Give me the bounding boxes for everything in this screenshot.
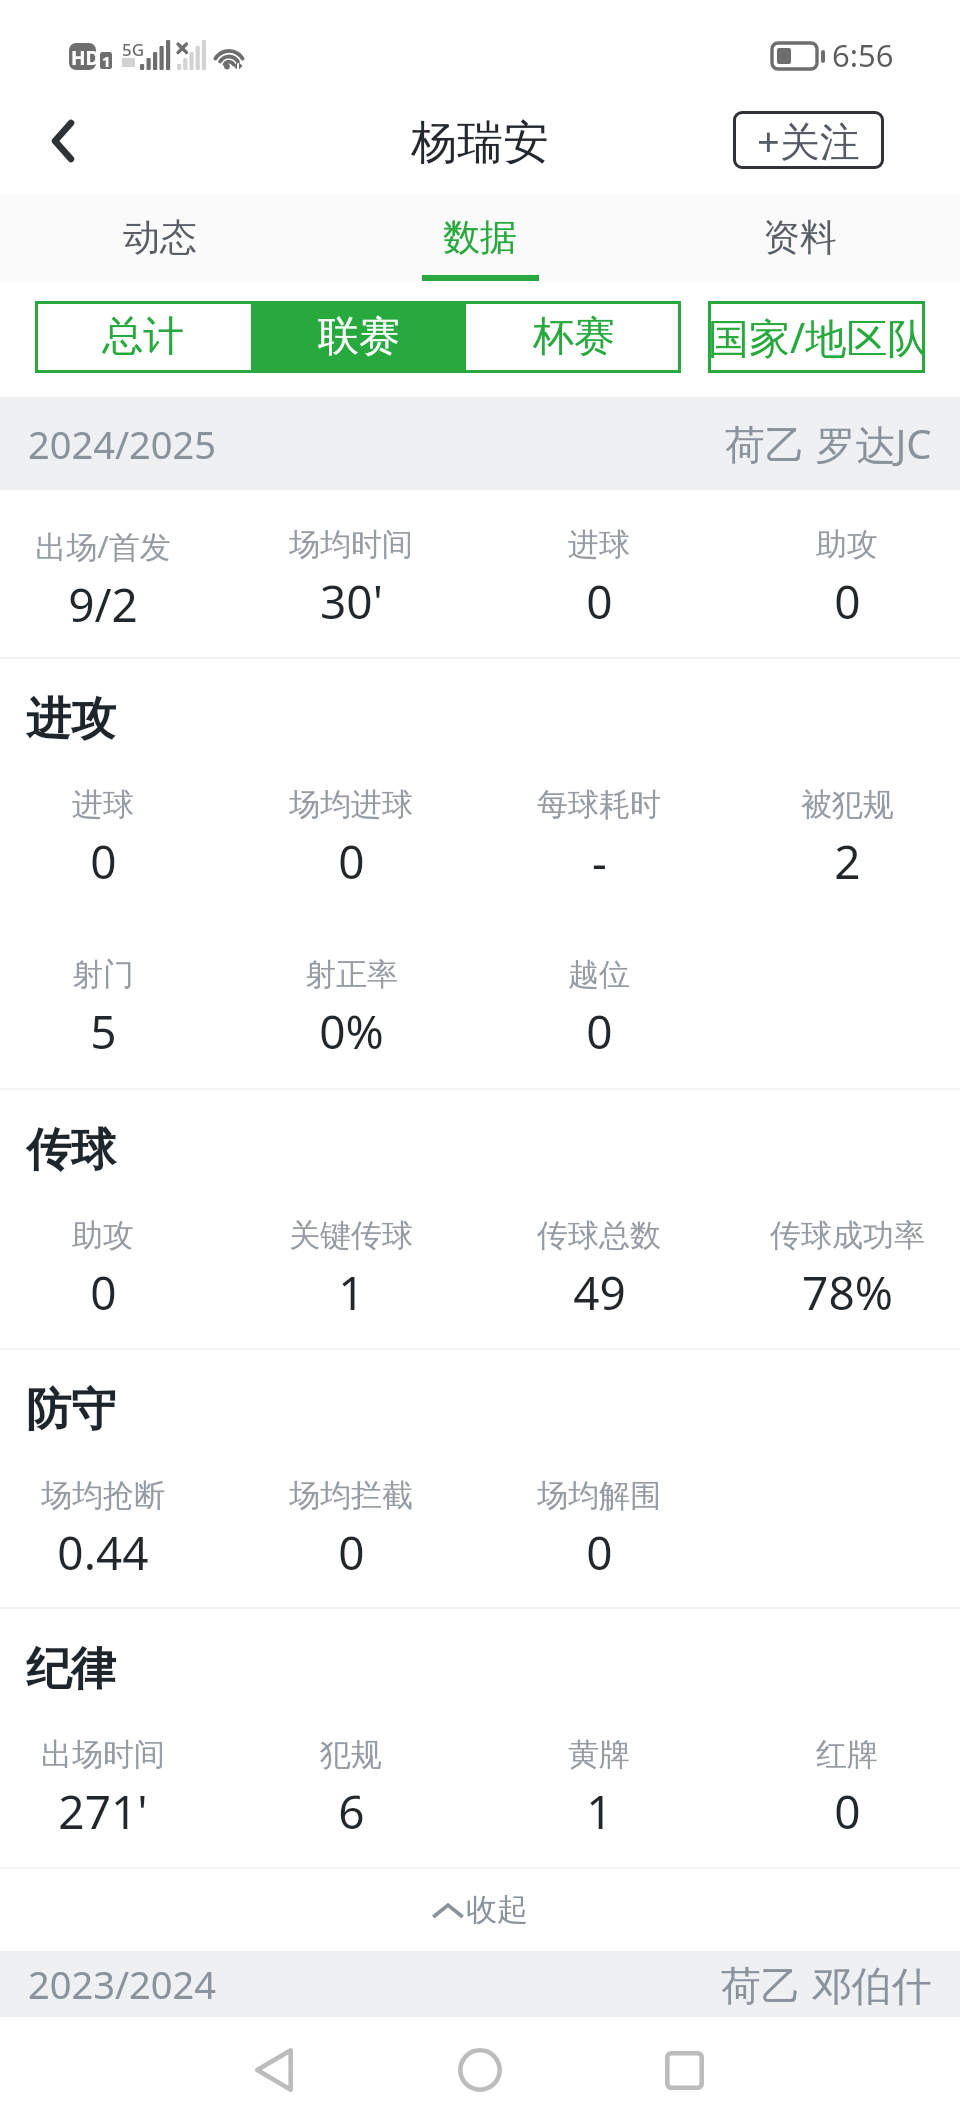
staticText: 联赛	[318, 311, 400, 363]
staticText: -	[592, 830, 607, 893]
button[interactable]: Back	[228, 2024, 320, 2116]
staticText: 0	[338, 830, 365, 893]
staticText: 传球总数	[537, 1216, 661, 1255]
staticText: 1	[102, 51, 111, 71]
staticText: 271'	[58, 1780, 148, 1843]
staticText: 6	[338, 1780, 365, 1843]
button[interactable]: Back	[17, 95, 109, 187]
staticText: 出场时间	[41, 1735, 165, 1774]
staticText: 1	[338, 1261, 365, 1324]
staticText: 射正率	[305, 955, 398, 994]
staticText: HD	[71, 45, 100, 71]
staticText: 总计	[102, 311, 184, 363]
button[interactable]: Recents	[638, 2024, 730, 2116]
staticText: 进球	[568, 525, 630, 564]
button[interactable]: 2024/2025	[0, 397, 960, 490]
staticText: 场均抢断	[41, 1476, 165, 1515]
staticText: 荷乙 罗达JC	[725, 416, 932, 471]
button[interactable]: 联赛	[251, 301, 466, 373]
button[interactable]: 动态	[0, 194, 320, 281]
button[interactable]: 收起	[0, 1869, 960, 1951]
staticText: 2	[834, 830, 861, 893]
staticText: 1	[586, 1780, 613, 1843]
staticText: 被犯规	[801, 785, 894, 824]
staticText: 0	[834, 570, 861, 633]
staticText: 每球耗时	[537, 785, 661, 824]
staticText: 场均拦截	[289, 1476, 413, 1515]
staticText: 越位	[568, 955, 630, 994]
staticText: 防守	[26, 1382, 116, 1439]
staticText: 9/2	[68, 573, 138, 636]
button[interactable]: +关注	[733, 111, 884, 169]
staticText: 进球	[72, 785, 134, 824]
staticText: 场均解围	[537, 1476, 661, 1515]
staticText: 国家/地区队	[708, 309, 925, 365]
staticText: +关注	[757, 113, 860, 168]
staticText: 红牌	[816, 1735, 878, 1774]
staticText: 49	[573, 1261, 626, 1324]
staticText: 0.44	[57, 1521, 149, 1584]
staticText: 资料	[763, 214, 837, 261]
button[interactable]: 数据	[320, 194, 640, 281]
staticText: 6:56	[832, 34, 894, 76]
staticText: 0	[586, 1000, 613, 1063]
staticText: 助攻	[72, 1216, 134, 1255]
staticText: 犯规	[320, 1735, 382, 1774]
staticText: 0	[586, 570, 613, 633]
staticText: 0	[90, 830, 117, 893]
staticText: 2023/2024	[28, 1958, 217, 2010]
staticText: 数据	[443, 214, 517, 261]
staticText: 0	[338, 1521, 365, 1584]
button[interactable]: Home	[434, 2024, 526, 2116]
staticText: 5	[90, 1000, 117, 1063]
staticText: 荷乙 邓伯什	[721, 1957, 932, 2012]
button[interactable]: 国家/地区队	[708, 301, 925, 373]
staticText: 动态	[123, 214, 197, 261]
staticText: 出场/首发	[35, 525, 171, 567]
staticText: 黄牌	[568, 1735, 630, 1774]
staticText: 杨瑞安	[411, 114, 549, 172]
button[interactable]: 杯赛	[466, 301, 681, 373]
staticText: 传球成功率	[770, 1216, 925, 1255]
button[interactable]: 资料	[640, 194, 960, 281]
staticText: 射门	[72, 955, 134, 994]
staticText: 78%	[802, 1261, 893, 1324]
staticText: 杯赛	[533, 311, 615, 363]
staticText: 传球	[26, 1122, 116, 1179]
staticText: 0	[586, 1521, 613, 1584]
staticText: 5G	[122, 38, 145, 61]
button[interactable]: 2023/2024	[0, 1951, 960, 2017]
staticText: 进攻	[26, 691, 116, 748]
staticText: 场均时间	[289, 525, 413, 564]
staticText: 30'	[320, 570, 383, 633]
staticText: 0%	[319, 1000, 384, 1063]
staticText: 2024/2025	[28, 418, 217, 470]
staticText: 纪律	[26, 1641, 116, 1698]
staticText: 关键传球	[289, 1216, 413, 1255]
staticText: 0	[834, 1780, 861, 1843]
button[interactable]: 总计	[35, 301, 251, 373]
staticText: 0	[90, 1261, 117, 1324]
staticText: 助攻	[816, 525, 878, 564]
staticText: 场均进球	[289, 785, 413, 824]
staticText: 收起	[466, 1890, 528, 1929]
